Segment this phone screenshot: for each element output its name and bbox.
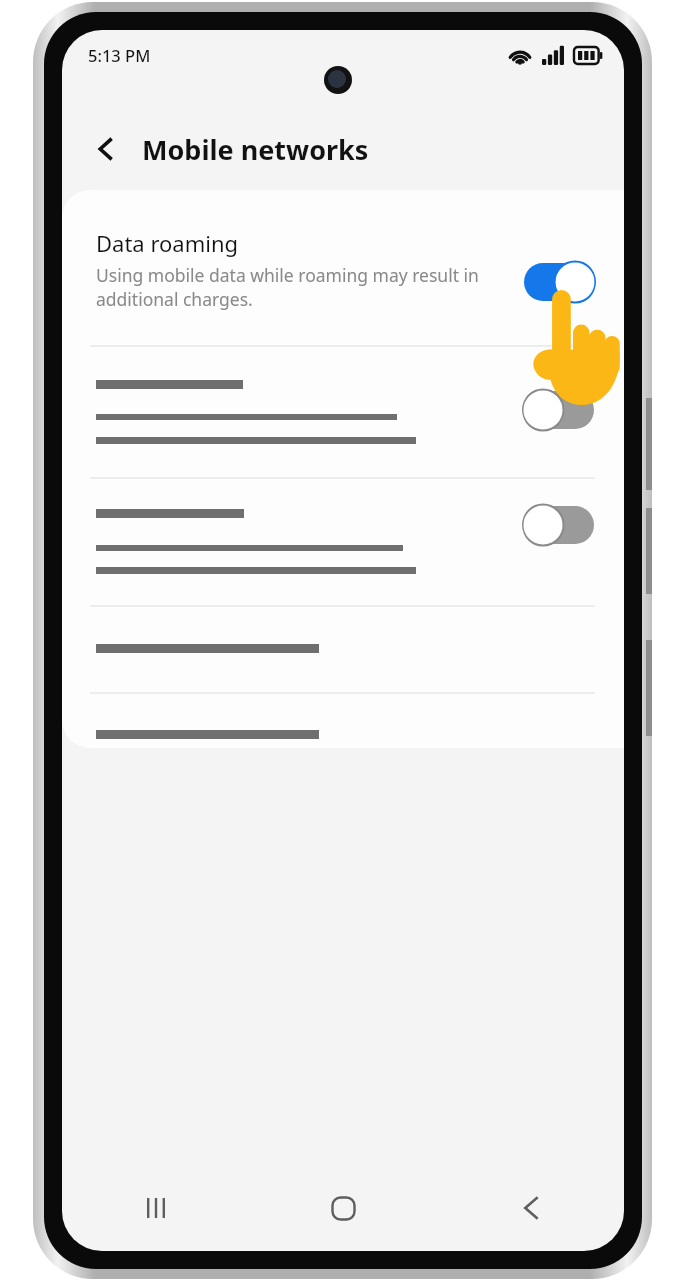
staticText: Mobile networks	[142, 131, 369, 168]
staticText: Using mobile data while roaming may resu…	[96, 263, 496, 311]
button[interactable]: Toggle off	[522, 502, 596, 548]
staticText: 5:13 PM	[88, 44, 151, 66]
button[interactable]: Back	[437, 1171, 624, 1245]
button[interactable]: Data roaming toggle, on	[522, 259, 596, 305]
button[interactable]: Data roaming	[62, 190, 624, 345]
button[interactable]: Recent apps	[62, 1171, 250, 1245]
button[interactable]: Toggle off	[522, 387, 596, 433]
staticText: Data roaming	[96, 228, 239, 258]
button[interactable]: Back	[80, 123, 132, 175]
button[interactable]: Home	[250, 1171, 437, 1245]
